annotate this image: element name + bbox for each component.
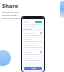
button[interactable] xyxy=(23,57,43,62)
staticText: Share xyxy=(2,2,19,9)
button[interactable] xyxy=(23,50,43,56)
button[interactable] xyxy=(23,38,43,43)
button[interactable] xyxy=(23,31,43,37)
staticText: from anywhere. xyxy=(2,16,21,19)
staticText: directly to your xyxy=(2,10,20,13)
staticText: private folder xyxy=(2,13,18,16)
button[interactable]: Submit xyxy=(24,67,42,70)
button[interactable] xyxy=(23,44,43,49)
button[interactable] xyxy=(23,20,43,28)
